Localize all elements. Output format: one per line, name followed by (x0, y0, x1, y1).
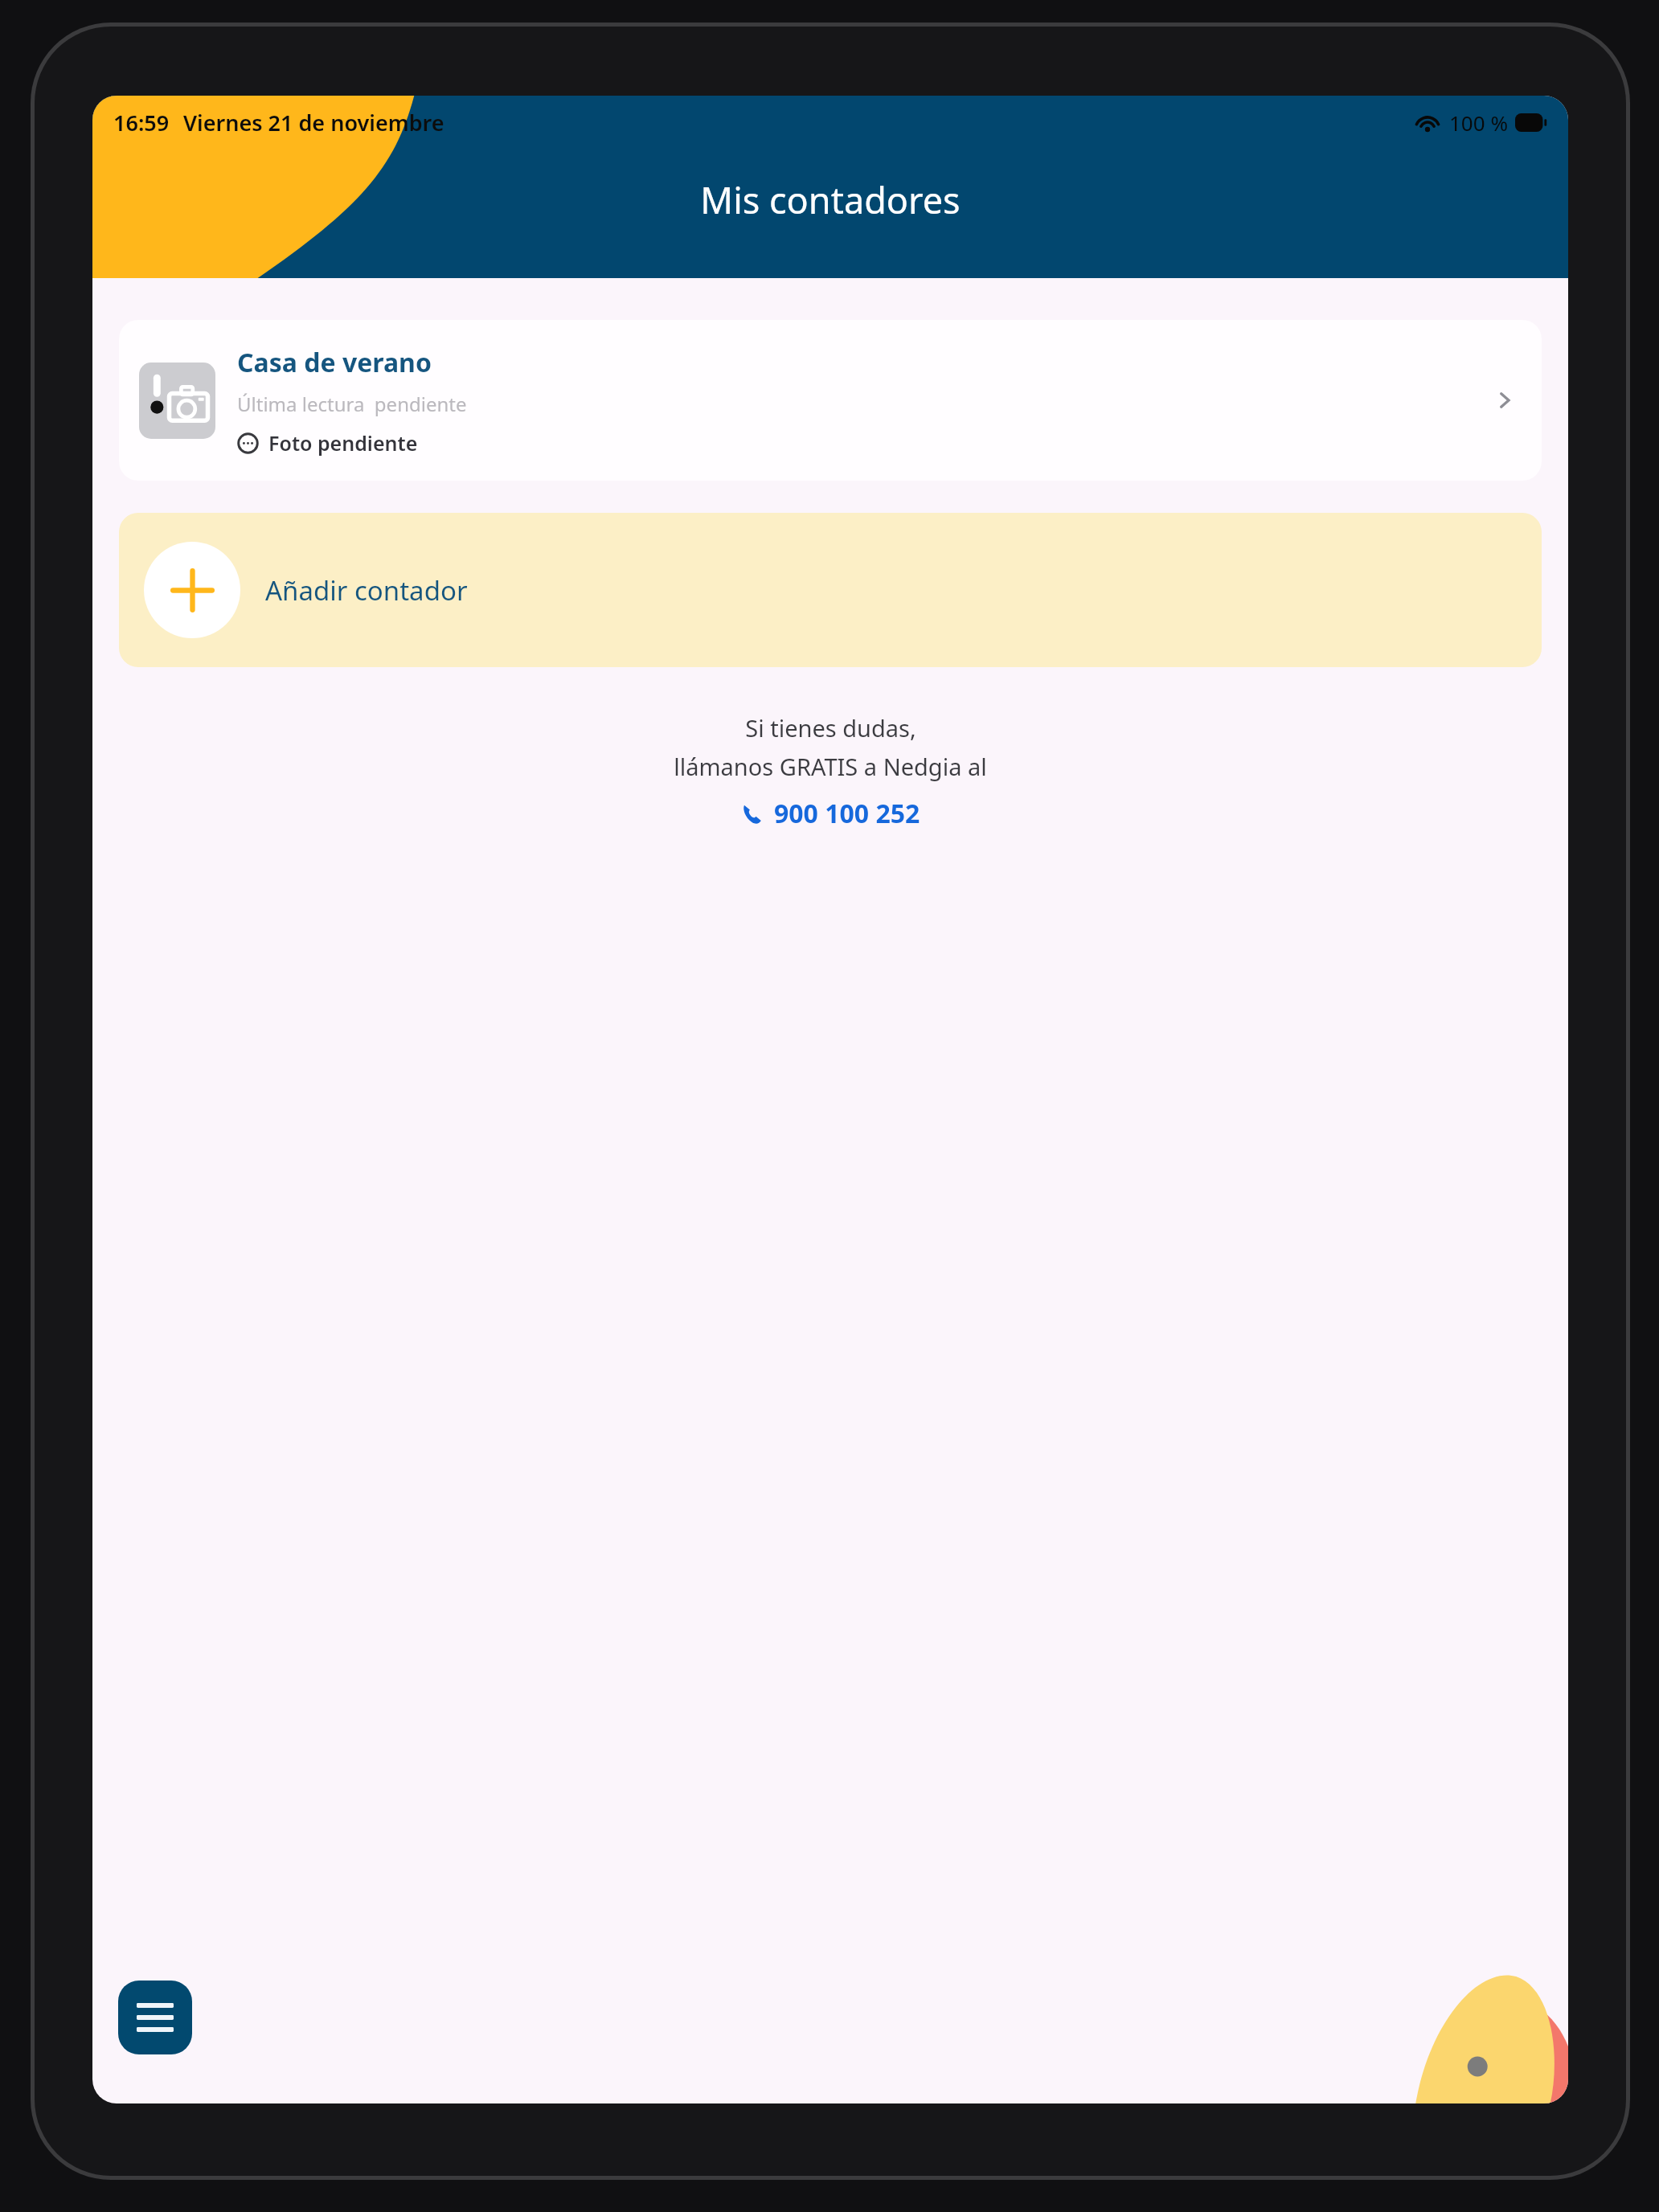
staticText: Viernes 21 de noviembre (183, 108, 444, 137)
staticText: Añadir contador (265, 572, 468, 608)
staticText: 900 100 252 (774, 796, 920, 831)
staticText: llámanos GRATIS a Nedgia al (674, 751, 987, 782)
button[interactable]: Casa de verano (119, 320, 1542, 481)
staticText: Casa de verano (237, 345, 432, 380)
staticText: Si tienes dudas, (745, 712, 916, 743)
staticText: Foto pendiente (268, 429, 418, 457)
button[interactable]: 900 100 252 (740, 796, 920, 831)
button[interactable]: Menú (118, 1981, 192, 2054)
staticText: Última lectura pendiente (237, 391, 467, 417)
staticText: 100 % (1449, 109, 1508, 137)
staticText: 16:59 (113, 108, 170, 137)
button[interactable]: Añadir contador (119, 513, 1542, 667)
staticText: Mis contadores (700, 175, 961, 224)
